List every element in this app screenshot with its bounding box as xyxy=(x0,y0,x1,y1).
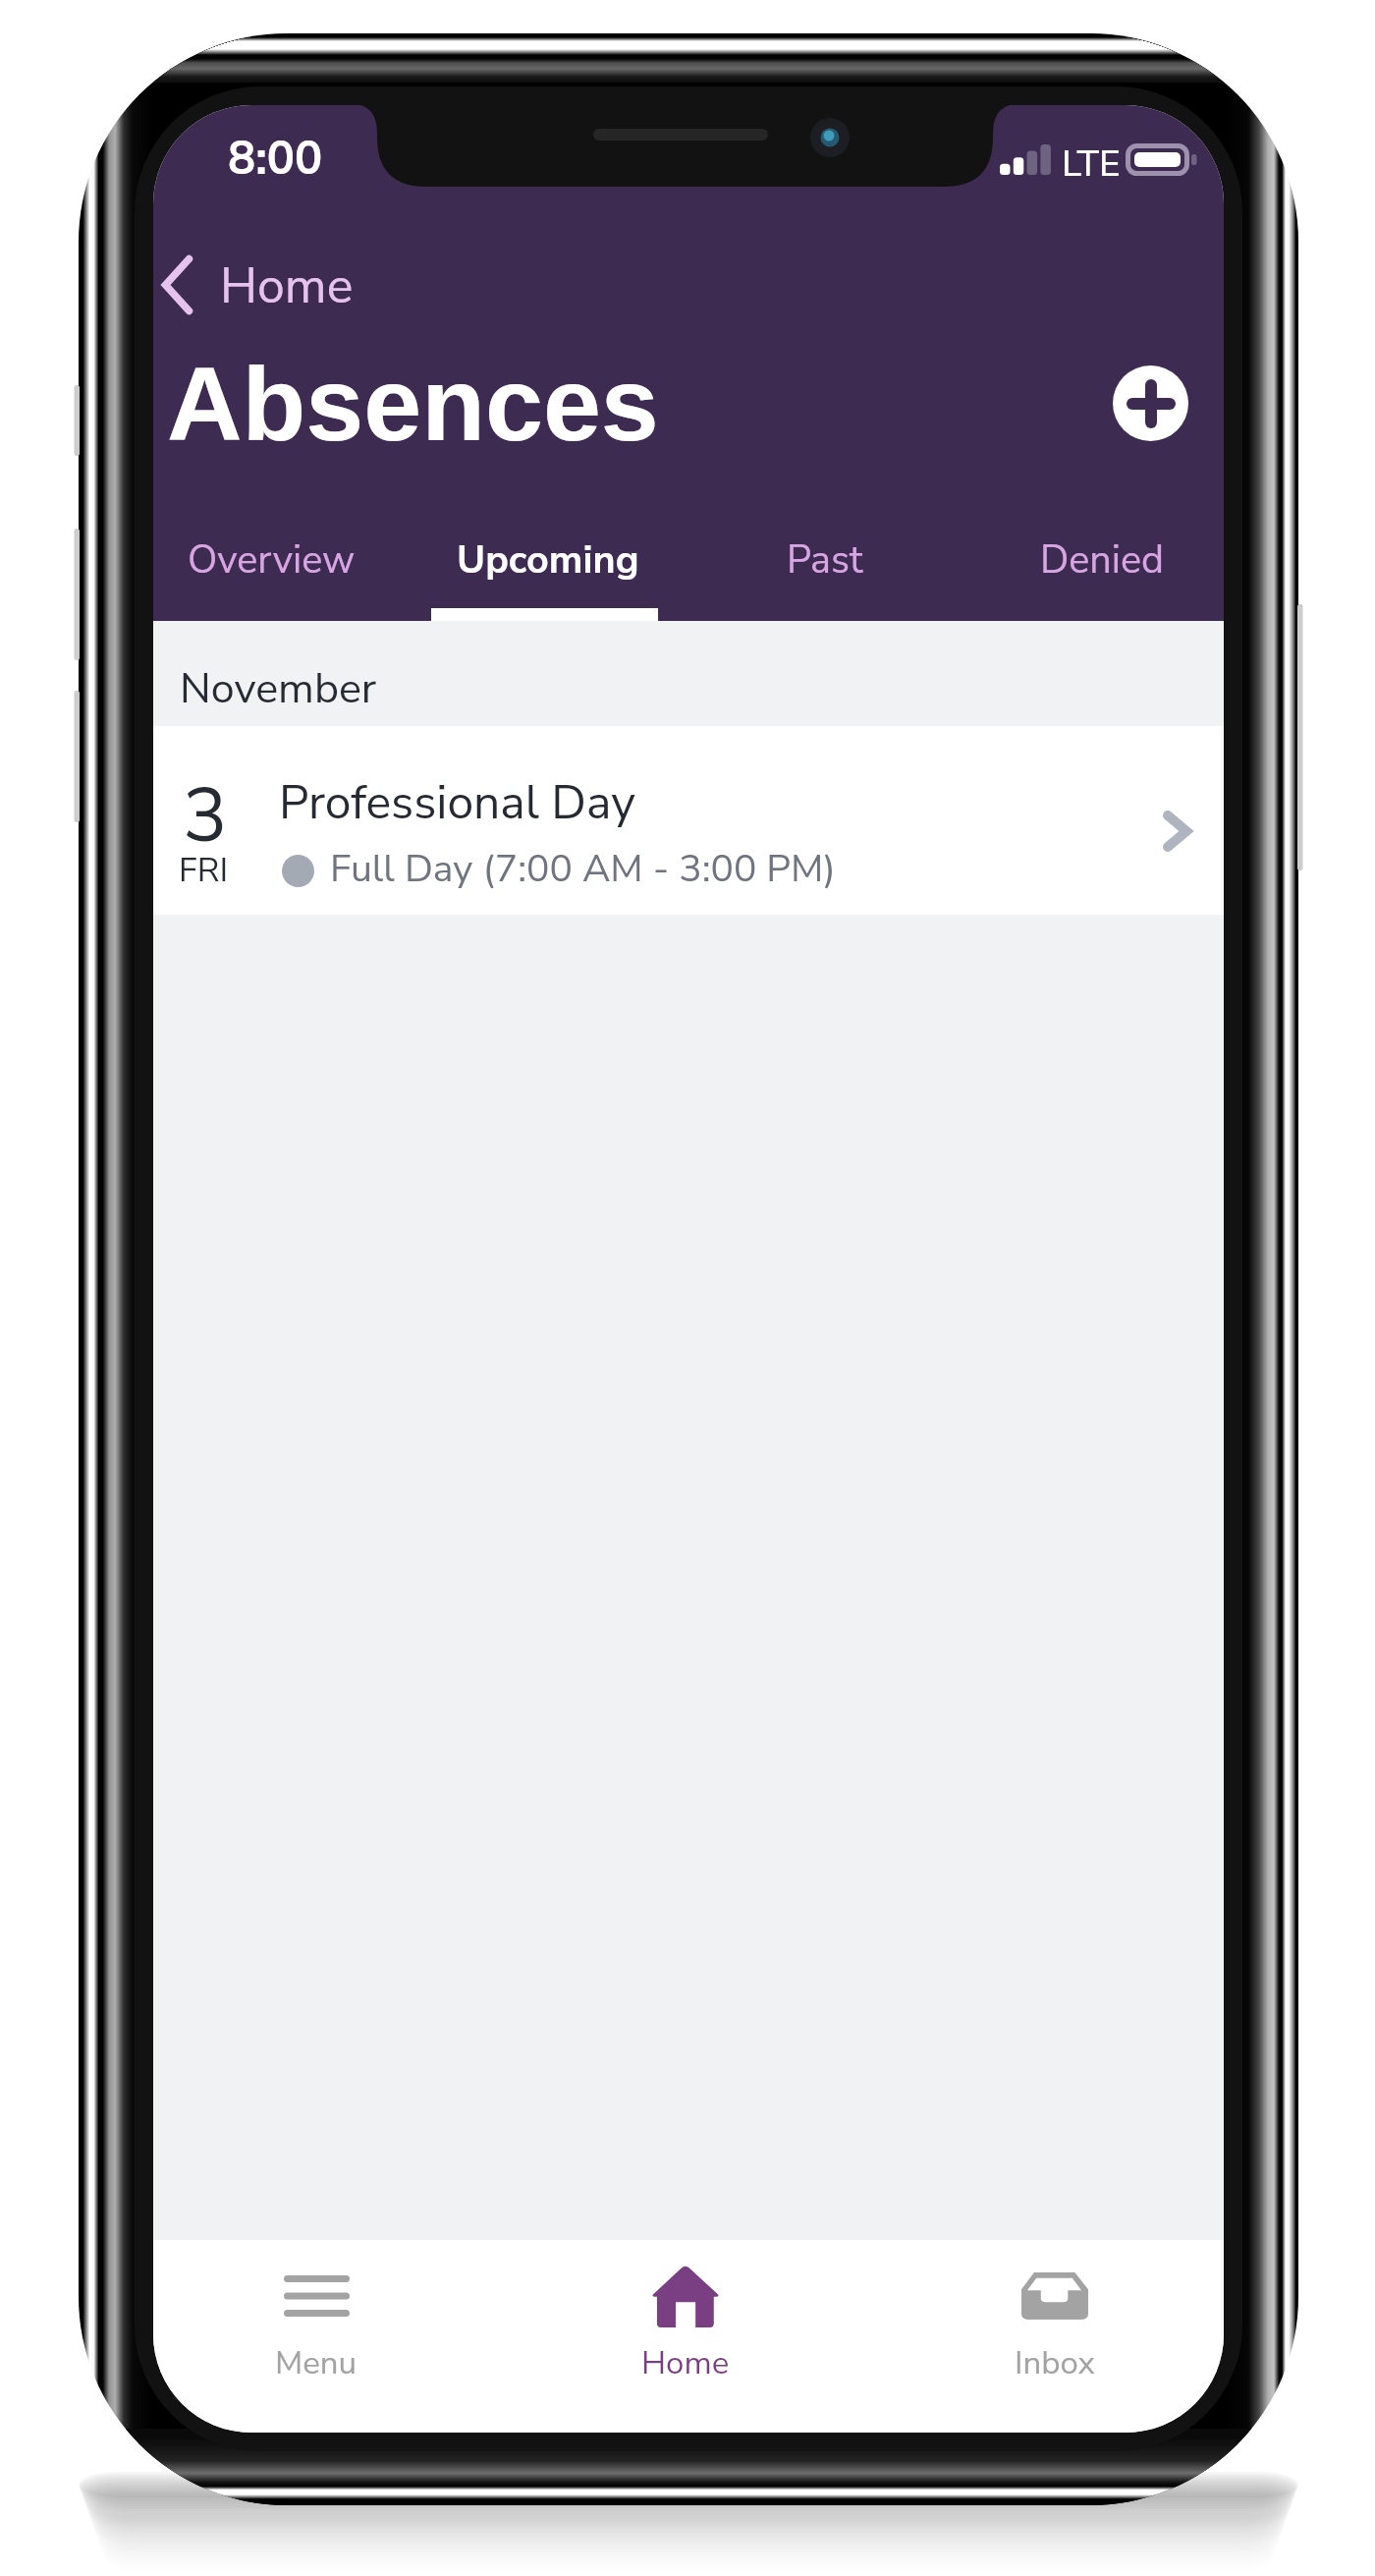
button[interactable]: Menu xyxy=(228,2240,405,2433)
button[interactable]: 3 xyxy=(153,726,1224,915)
staticText: Absences xyxy=(167,346,659,462)
button[interactable]: Past xyxy=(691,488,959,621)
button[interactable]: Home xyxy=(220,252,354,319)
staticText: November xyxy=(180,660,377,718)
staticText: Professional Day xyxy=(279,770,635,834)
button[interactable]: Upcoming xyxy=(414,488,682,621)
button[interactable]: Home xyxy=(597,2240,774,2433)
button[interactable]: Overview xyxy=(153,488,405,621)
staticText: FRI xyxy=(179,848,229,893)
staticText: LTE xyxy=(1062,140,1121,189)
button[interactable]: Back xyxy=(153,251,202,319)
staticText: 3 xyxy=(183,765,228,868)
button[interactable]: Add absence xyxy=(1113,365,1188,441)
staticText: Upcoming xyxy=(457,533,639,587)
staticText: Menu xyxy=(275,2341,357,2385)
staticText: Overview xyxy=(188,533,356,587)
staticText: Inbox xyxy=(1015,2341,1095,2385)
staticText: Home xyxy=(641,2341,730,2385)
button[interactable]: Denied xyxy=(968,488,1224,621)
staticText: Full Day (7:00 AM - 3:00 PM) xyxy=(330,843,836,895)
staticText: Denied xyxy=(1040,533,1164,587)
staticText: 8:00 xyxy=(228,127,323,190)
button[interactable]: Inbox xyxy=(966,2240,1143,2433)
staticText: Past xyxy=(787,533,863,587)
